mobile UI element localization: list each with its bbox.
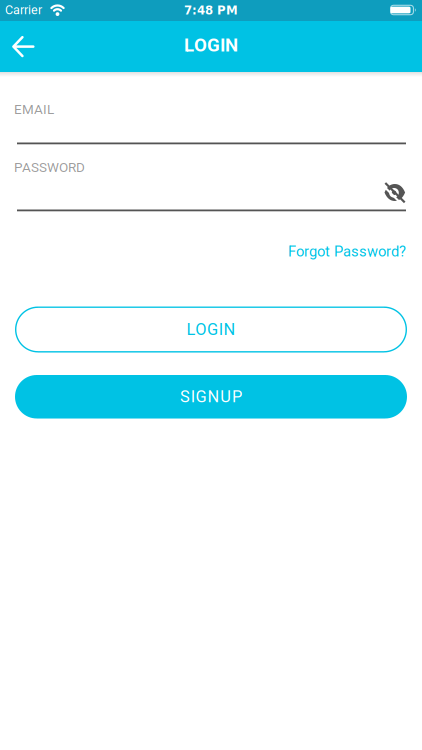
staticText: LOGIN (186, 320, 236, 339)
staticText: 7:48 PM (184, 4, 238, 17)
staticText: EMAIL (14, 101, 54, 117)
staticText: Carrier (5, 3, 42, 17)
button[interactable]: SIGNUP (15, 375, 407, 418)
staticText: Forgot Password? (288, 243, 406, 260)
button[interactable]: Back (0, 21, 46, 72)
staticText: LOGIN (184, 34, 238, 56)
button[interactable]: Forgot Password? (288, 243, 406, 260)
staticText: SIGNUP (180, 387, 242, 406)
button[interactable]: Show password (384, 182, 406, 203)
button[interactable]: LOGIN (15, 306, 407, 352)
staticText: PASSWORD (14, 159, 85, 175)
